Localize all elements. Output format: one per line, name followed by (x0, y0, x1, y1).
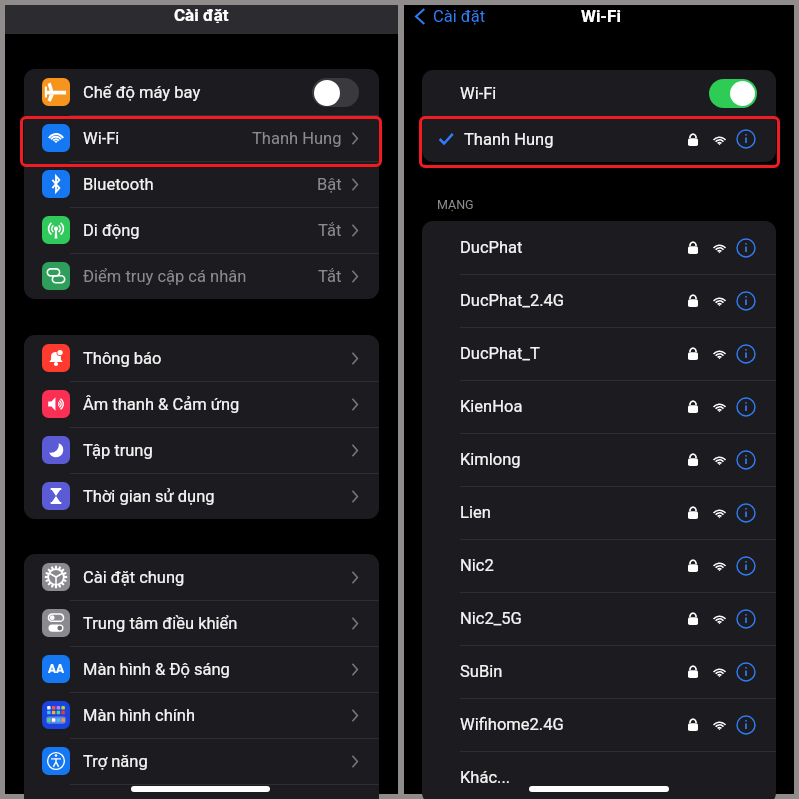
button[interactable]: Tập trung (24, 427, 379, 473)
staticText: Màn hình chính (83, 706, 196, 725)
button[interactable]: Network info (736, 556, 756, 576)
button[interactable]: Wifihome2.4G (422, 698, 776, 751)
button[interactable]: Thanh Hung (438, 116, 756, 162)
button[interactable]: Âm thanh & Cảm ứng (24, 381, 379, 427)
staticText: Wi-Fi (581, 6, 621, 26)
button[interactable]: Lien (422, 486, 776, 539)
button[interactable]: DucPhat_T (422, 327, 776, 380)
button[interactable]: Trợ năng (24, 738, 379, 784)
staticText: DucPhat_2.4G (460, 291, 565, 310)
button[interactable]: Bluetooth (24, 161, 379, 207)
button[interactable]: Trung tâm điều khiển (24, 600, 379, 646)
staticText: Chế độ máy bay (83, 83, 201, 102)
staticText: Thời gian sử dụng (83, 487, 215, 506)
button[interactable]: Wi-Fi (460, 70, 757, 116)
staticText: Thông báo (83, 349, 162, 368)
staticText: Bluetooth (83, 175, 154, 194)
button[interactable]: Network info (736, 344, 756, 364)
staticText: Cài đặt chung (83, 568, 185, 587)
button[interactable]: Kimlong (422, 433, 776, 486)
staticText: DucPhat_T (460, 344, 540, 363)
button[interactable]: Network info (736, 450, 756, 470)
staticText: AA (48, 662, 65, 676)
button[interactable]: Network info (736, 609, 756, 629)
button[interactable]: Network info (736, 129, 756, 149)
button[interactable] (419, 116, 780, 168)
staticText: Wi-Fi (83, 129, 120, 148)
staticText: KienHoa (460, 397, 523, 416)
staticText: Trung tâm điều khiển (83, 614, 238, 633)
button[interactable]: SuBin (422, 645, 776, 698)
button[interactable]: Khác... (422, 751, 776, 799)
button[interactable]: Network info (736, 662, 756, 682)
button[interactable]: Network info (736, 238, 756, 258)
staticText: Tập trung (83, 441, 153, 460)
staticText: Thanh Hung (252, 129, 342, 148)
staticText: Điểm truy cập cá nhân (83, 267, 247, 286)
button[interactable]: Network info (736, 503, 756, 523)
button[interactable]: Nic2 (422, 539, 776, 592)
staticText: Lien (460, 503, 491, 522)
staticText: MẠNG (437, 197, 474, 212)
button[interactable]: Wi-Fi (24, 115, 379, 161)
staticText: DucPhat (460, 238, 523, 257)
staticText: Di động (83, 221, 140, 240)
staticText: Nic2 (460, 556, 494, 575)
staticText: Màn hình & Độ sáng (83, 660, 230, 679)
button[interactable]: Nic2_5G (422, 592, 776, 645)
button[interactable]: Network info (736, 715, 756, 735)
staticText: Khác... (460, 768, 511, 787)
button[interactable]: DucPhat (422, 221, 776, 274)
staticText: Âm thanh & Cảm ứng (83, 395, 240, 414)
button[interactable]: Thời gian sử dụng (24, 473, 379, 519)
button[interactable]: Cài đặt (414, 7, 486, 26)
button[interactable]: Cài đặt chung (24, 554, 379, 600)
button[interactable] (20, 116, 382, 167)
button[interactable]: Điểm truy cập cá nhân (24, 253, 379, 299)
button[interactable]: Di động (24, 207, 379, 253)
button[interactable]: AA (24, 646, 379, 692)
button[interactable]: Màn hình chính (24, 692, 379, 738)
button[interactable]: DucPhat_2.4G (422, 274, 776, 327)
button[interactable]: Chế độ máy bay (24, 69, 379, 115)
button[interactable] (24, 784, 379, 799)
staticText: Wi-Fi (460, 84, 497, 103)
staticText: Cài đặt (174, 5, 229, 23)
staticText: Trợ năng (83, 752, 148, 771)
staticText: SuBin (460, 662, 503, 681)
staticText: Kimlong (460, 450, 521, 469)
button[interactable]: Network info (736, 397, 756, 417)
button[interactable]: KienHoa (422, 380, 776, 433)
staticText: Cài đặt (433, 7, 486, 26)
button[interactable]: Thông báo (24, 335, 379, 381)
staticText: Tắt (318, 267, 342, 286)
staticText: Wifihome2.4G (460, 715, 564, 734)
staticText: Bật (317, 175, 342, 194)
button[interactable]: Network info (736, 291, 756, 311)
staticText: Nic2_5G (460, 609, 522, 628)
staticText: Thanh Hung (464, 130, 554, 149)
staticText: Tắt (318, 221, 342, 240)
